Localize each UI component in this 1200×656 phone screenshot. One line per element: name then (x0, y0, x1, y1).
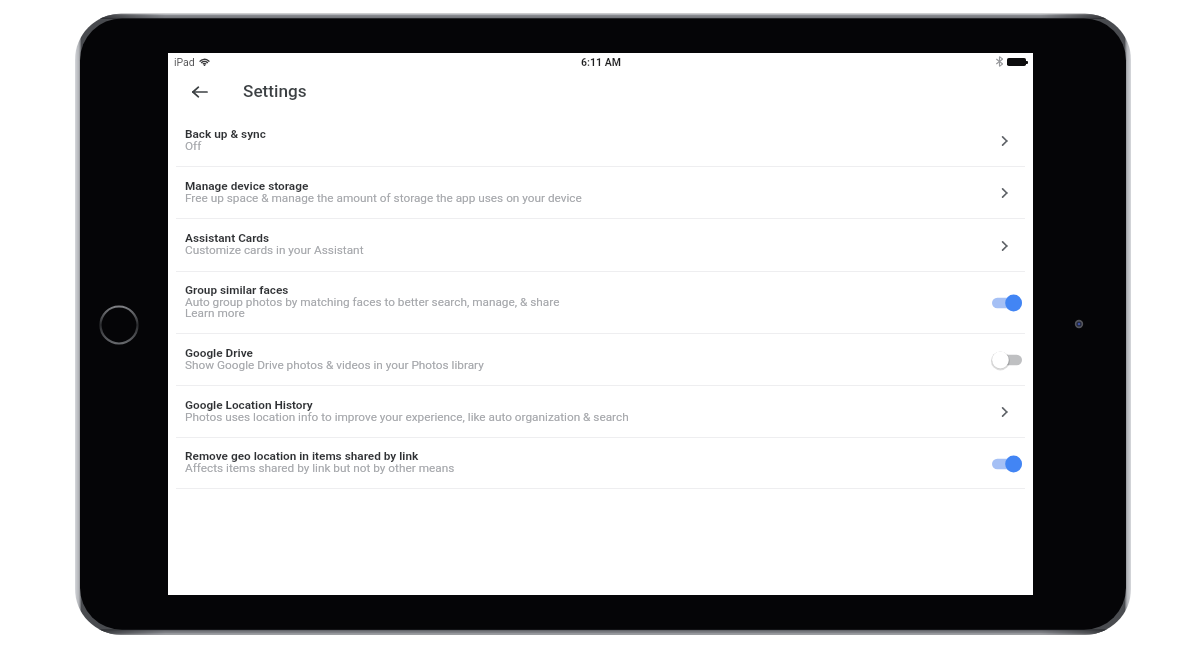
button[interactable]: Assistant Cards (168, 219, 1033, 272)
button[interactable]: Google Location History (168, 386, 1033, 438)
staticText: Manage device storage (185, 179, 309, 193)
staticText: Assistant Cards (185, 231, 270, 245)
staticText: Google Location History (185, 398, 313, 412)
staticText: Free up space & manage the amount of sto… (185, 191, 582, 205)
button[interactable]: Manage device storage (168, 167, 1033, 219)
staticText: Back up & sync (185, 127, 266, 141)
button[interactable]: Open Google Location History (997, 405, 1011, 419)
staticText: Auto group photos by matching faces to b… (185, 295, 560, 309)
staticText: iPad (174, 56, 195, 68)
button[interactable]: Back (192, 84, 208, 100)
button[interactable]: Group similar faces switch (989, 293, 1022, 313)
button[interactable]: Google Drive (168, 334, 1033, 386)
button[interactable]: Google Drive switch (989, 350, 1022, 370)
button[interactable]: Remove geo location in items shared by l… (168, 438, 1033, 489)
staticText: Remove geo location in items shared by l… (185, 449, 419, 463)
staticText: Off (185, 139, 202, 153)
button[interactable]: Open Back up & sync (997, 134, 1011, 148)
button[interactable]: Group similar faces (168, 272, 1033, 334)
button[interactable]: Open Manage device storage (997, 186, 1011, 200)
staticText: Affects items shared by link but not by … (185, 461, 455, 475)
button[interactable]: Open Assistant Cards (997, 239, 1011, 253)
staticText: Group similar faces (185, 283, 289, 297)
staticText: Google Drive (185, 346, 253, 360)
staticText: Learn more (185, 306, 245, 320)
staticText: Customize cards in your Assistant (185, 243, 364, 257)
staticText: Show Google Drive photos & videos in you… (185, 358, 484, 372)
staticText: Photos uses location info to improve you… (185, 410, 629, 424)
staticText: Settings (243, 81, 307, 101)
button[interactable]: Remove geo location in items shared by l… (989, 454, 1022, 474)
staticText: 6:11 AM (581, 56, 621, 68)
button[interactable]: Back up & sync (168, 115, 1033, 167)
